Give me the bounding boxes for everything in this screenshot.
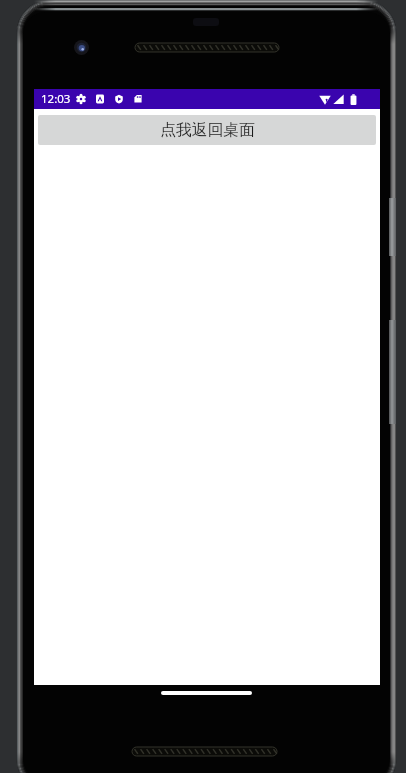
staticText: 点我返回桌面 bbox=[160, 120, 255, 140]
button[interactable]: 点我返回桌面 bbox=[38, 115, 376, 145]
staticText: 12:03 bbox=[41, 91, 71, 107]
